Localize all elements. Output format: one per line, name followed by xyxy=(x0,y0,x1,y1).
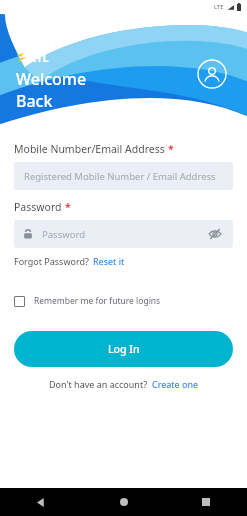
button[interactable]: Recent apps xyxy=(195,491,217,513)
button[interactable]: Password xyxy=(14,220,233,248)
staticText: Reset it xyxy=(93,255,125,267)
staticText: Registered Mobile Number / Email Address xyxy=(24,170,216,183)
button[interactable]: Home xyxy=(113,491,135,513)
staticText: * xyxy=(168,142,174,156)
button[interactable]: Reset it xyxy=(93,255,125,267)
button[interactable]: Create one xyxy=(152,378,199,390)
staticText: * xyxy=(65,200,71,214)
staticText: Back xyxy=(16,90,53,112)
staticText: Create one xyxy=(152,378,199,390)
staticText: Password xyxy=(42,228,205,241)
staticText: Don't have an account? xyxy=(49,378,148,390)
button[interactable]: Profile xyxy=(197,59,227,89)
staticText: Forgot Password? xyxy=(14,255,89,267)
button[interactable]: Log In xyxy=(14,331,233,367)
staticText: Password xyxy=(14,200,62,214)
staticText: LTE xyxy=(214,3,224,11)
button[interactable]: Registered Mobile Number / Email Address xyxy=(14,162,233,190)
button[interactable]: Back xyxy=(30,491,52,513)
staticText: Welcome xyxy=(16,68,87,90)
staticText: Remember me for future logins xyxy=(34,295,161,307)
button[interactable]: Remember me for future logins xyxy=(14,293,161,309)
staticText: RTL xyxy=(29,50,49,65)
button[interactable]: Show password xyxy=(205,224,225,244)
staticText: Mobile Number/Email Address xyxy=(14,142,165,156)
staticText: Log In xyxy=(108,342,140,356)
